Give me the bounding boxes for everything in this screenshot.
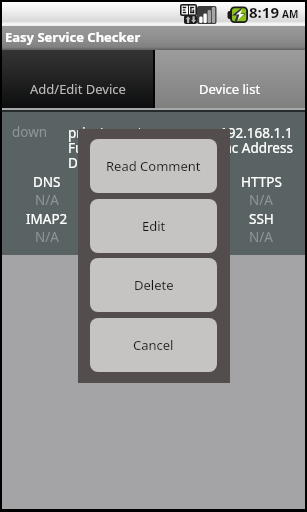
staticText: Delete <box>134 276 174 294</box>
staticText: HTTPS <box>241 173 282 191</box>
staticText: AM <box>282 7 299 21</box>
staticText: DNS <box>33 173 61 191</box>
staticText: IMAP2 <box>26 210 68 228</box>
button[interactable]: Cancel <box>90 318 217 372</box>
staticText: Add/Edit Device <box>30 80 126 98</box>
staticText: Device list <box>199 80 261 98</box>
staticText: N/A <box>35 191 59 209</box>
staticText: 192.168.1.1 <box>220 124 293 142</box>
staticText: N/A <box>35 228 59 246</box>
button[interactable]: Device list <box>155 50 305 108</box>
staticText: private router <box>68 124 156 142</box>
staticText: Edit <box>142 217 166 235</box>
staticText: down <box>12 123 48 141</box>
staticText: Easy Service Checker <box>5 28 141 46</box>
staticText: Mac Address <box>212 139 293 157</box>
staticText: Full Scan <box>68 139 124 157</box>
staticText: Cancel <box>133 336 174 354</box>
staticText: 8:19 <box>249 2 279 22</box>
staticText: Read Comment <box>106 157 201 175</box>
staticText: N/A <box>249 228 273 246</box>
button[interactable]: Edit <box>90 199 217 253</box>
staticText: Date <box>68 154 98 172</box>
staticText: SSH <box>249 210 274 228</box>
button[interactable]: Read Comment <box>90 139 217 193</box>
button[interactable]: Add/Edit Device <box>2 50 153 108</box>
staticText: N/A <box>249 191 273 209</box>
button[interactable]: Delete <box>90 258 217 312</box>
button[interactable]: Easy Service Checker <box>2 26 305 50</box>
button[interactable]: down <box>2 112 305 255</box>
